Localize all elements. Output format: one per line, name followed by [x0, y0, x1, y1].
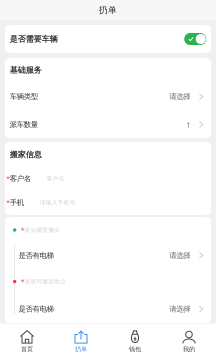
- button[interactable]: *: [5, 217, 211, 243]
- staticText: 请输入手机号: [40, 199, 76, 206]
- staticText: 首页: [21, 345, 33, 353]
- staticText: *: [21, 277, 25, 286]
- staticText: 是否需要车辆: [10, 34, 58, 44]
- staticText: 派车数量: [10, 120, 38, 129]
- button[interactable]: 我的: [162, 323, 216, 360]
- button[interactable]: 是否需要车辆: [184, 33, 206, 45]
- staticText: 扔单: [99, 4, 117, 15]
- button[interactable]: 派车数量: [5, 111, 211, 138]
- button[interactable]: 车辆类型: [5, 82, 211, 111]
- button[interactable]: *: [5, 268, 211, 295]
- staticText: 请选择: [169, 92, 190, 101]
- staticText: 请选择: [169, 251, 190, 260]
- staticText: 是否有电梯: [19, 304, 54, 314]
- staticText: 扔单: [75, 345, 87, 353]
- staticText: 我的: [183, 345, 195, 353]
- staticText: 搬家信息: [10, 149, 42, 160]
- staticText: 钱包: [129, 345, 141, 353]
- staticText: 是否有电梯: [19, 251, 54, 260]
- staticText: 请选择: [169, 304, 190, 314]
- staticText: *: [6, 198, 10, 207]
- staticText: 请填写搬至地点: [24, 278, 66, 285]
- staticText: 1: [186, 119, 190, 130]
- button[interactable]: 首页: [0, 323, 54, 360]
- staticText: *: [6, 174, 10, 183]
- staticText: 客户名: [10, 174, 31, 183]
- staticText: 手机: [10, 198, 24, 207]
- staticText: 基础服务: [10, 65, 42, 75]
- staticText: 客户名: [47, 175, 65, 182]
- staticText: 请从哪里搬出: [24, 226, 60, 234]
- button[interactable]: 钱包: [108, 323, 162, 360]
- button[interactable]: 是否有电梯: [5, 295, 211, 323]
- button[interactable]: 是否有电梯: [5, 243, 211, 268]
- staticText: 车辆类型: [10, 92, 38, 101]
- staticText: *: [21, 225, 25, 235]
- button[interactable]: 扔单: [54, 323, 108, 360]
